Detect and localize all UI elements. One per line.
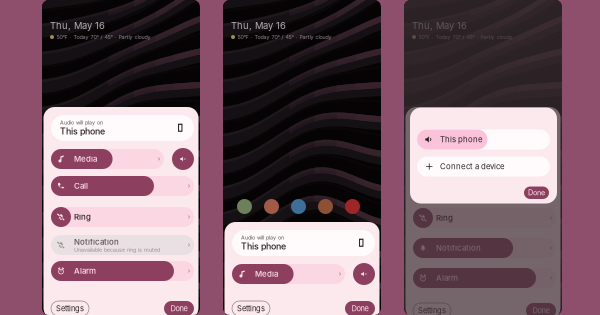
button[interactable]: Audio will play on [413,115,556,141]
button[interactable]: Audio will play on [51,115,194,141]
staticText: Media [255,269,278,279]
staticText: Thu, May 16 [231,20,286,31]
button[interactable]: Ring [51,207,194,227]
button[interactable]: Call [51,176,194,196]
button[interactable]: Done [524,186,549,199]
button[interactable]: Mute media [353,263,375,285]
staticText: Done [351,304,368,313]
staticText: Ring [436,213,453,223]
button[interactable]: Done [164,301,194,315]
button[interactable]: Mute media [534,148,556,170]
staticText: Notification [74,237,119,246]
staticText: This phone [440,135,483,144]
staticText: Thu, May 16 [50,20,105,31]
staticText: Connect a device [440,162,505,171]
staticText: Done [170,304,187,313]
button[interactable]: Mute media [172,148,194,170]
staticText: Audio will play on [241,234,284,241]
button[interactable]: Connect a device [417,156,550,176]
staticText: Settings [56,304,84,313]
staticText: Done [528,188,545,197]
button[interactable]: Media [413,149,526,169]
button[interactable]: Audio will play on [232,230,375,256]
staticText: This phone [241,241,286,251]
staticText: 50°F · Today 70° / 45° · Partly cloudy [418,34,512,40]
staticText: Call [74,181,88,191]
staticText: Ring [74,212,91,222]
button[interactable]: Settings [51,301,89,315]
staticText: Audio will play on [60,119,103,126]
button[interactable]: Done [345,301,375,315]
staticText: This phone [422,126,467,136]
staticText: Notification [436,243,481,253]
button[interactable]: This phone [417,129,550,149]
staticText: 50°F · Today 70° / 45° · Partly cloudy [237,34,331,40]
staticText: This phone [60,126,105,136]
button[interactable]: Settings [413,303,451,315]
button[interactable]: Done [526,303,556,315]
button[interactable]: Settings [232,301,270,315]
staticText: Media [74,154,97,164]
button[interactable]: Media [232,264,345,284]
button[interactable]: Notification [413,238,556,258]
staticText: Thu, May 16 [412,20,467,31]
staticText: Alarm [74,266,96,276]
button[interactable]: Notification [51,235,194,255]
staticText: Settings [418,306,446,315]
staticText: Alarm [436,273,458,283]
button[interactable]: Call [413,176,556,196]
button[interactable]: Ring [413,208,556,228]
staticText: Unavailable because ring is muted [74,246,160,253]
staticText: Media [436,154,459,164]
button[interactable]: Media [51,149,164,169]
staticText: Settings [237,304,265,313]
staticText: 50°F · Today 70° / 45° · Partly cloudy [56,34,150,40]
staticText: Done [532,306,549,315]
button[interactable]: Alarm [51,261,194,281]
button[interactable]: Alarm [413,268,556,288]
